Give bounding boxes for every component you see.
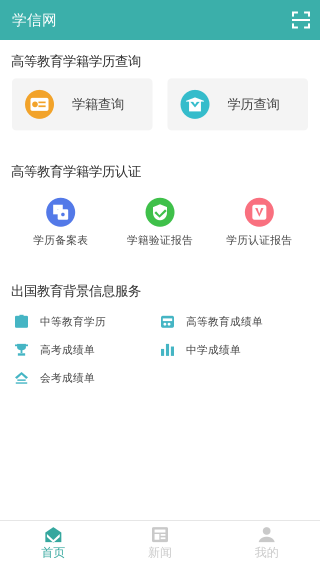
- button[interactable]: 学历认证报告: [210, 198, 309, 247]
- staticText: 新闻: [148, 545, 172, 560]
- staticText: 中等教育学历: [40, 315, 106, 328]
- button[interactable]: 会考成绩单: [15, 371, 161, 384]
- button[interactable]: 学历备案表: [11, 198, 110, 247]
- staticText: 学历认证报告: [226, 234, 292, 247]
- staticText: 中学成绩单: [186, 343, 241, 356]
- staticText: 学籍验证报告: [127, 234, 193, 247]
- staticText: 高等教育学籍学历认证: [11, 163, 141, 180]
- button[interactable]: 学籍验证报告: [110, 198, 210, 247]
- staticText: 学历备案表: [33, 234, 88, 247]
- staticText: 我的: [255, 545, 279, 560]
- staticText: 高考成绩单: [40, 343, 95, 356]
- staticText: 首页: [41, 545, 65, 560]
- button[interactable]: 我的: [213, 521, 320, 566]
- button[interactable]: 学籍查询: [12, 78, 152, 130]
- staticText: 学籍查询: [72, 96, 124, 113]
- staticText: 高等教育成绩单: [186, 315, 263, 328]
- staticText: 学信网: [12, 11, 57, 29]
- staticText: 高等教育学籍学历查询: [11, 53, 141, 69]
- button[interactable]: Scan QR code: [282, 3, 310, 36]
- staticText: 出国教育背景信息服务: [11, 283, 141, 299]
- staticText: 学历查询: [227, 96, 279, 113]
- button[interactable]: 中学成绩单: [161, 343, 307, 356]
- staticText: 会考成绩单: [40, 371, 95, 384]
- button[interactable]: 高等教育成绩单: [161, 315, 307, 328]
- button[interactable]: 新闻: [107, 521, 213, 566]
- button[interactable]: 首页: [0, 521, 107, 566]
- button[interactable]: 高考成绩单: [15, 343, 161, 356]
- button[interactable]: 学历查询: [167, 78, 308, 130]
- button[interactable]: 中等教育学历: [15, 315, 161, 328]
